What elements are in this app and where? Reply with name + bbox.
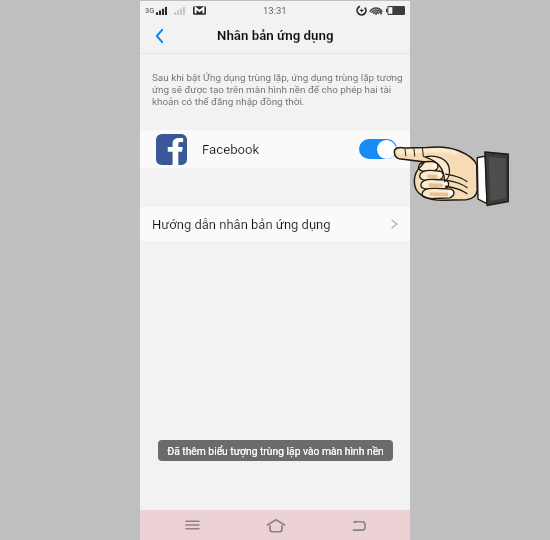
button[interactable]: Recent apps <box>150 510 234 540</box>
button[interactable]: Back <box>146 23 172 49</box>
button[interactable]: Hướng dẫn nhân bản ứng dụng <box>140 207 410 241</box>
button[interactable]: Facebook <box>140 130 410 168</box>
staticText: Facebook <box>202 142 260 157</box>
staticText: Hướng dẫn nhân bản ứng dụng <box>152 217 331 232</box>
button[interactable]: Home <box>234 510 317 540</box>
button[interactable]: Back <box>317 510 400 540</box>
staticText: Đã thêm biểu tượng trùng lặp vào màn hìn… <box>167 445 384 457</box>
button[interactable]: Toggle Facebook clone <box>359 139 397 159</box>
staticText: Sau khi bật Ứng dụng trùng lặp, ứng dụng… <box>152 72 406 108</box>
staticText: 13:31 <box>263 5 287 16</box>
staticText: Nhân bản ứng dụng <box>217 28 334 44</box>
staticText: 3G <box>145 6 155 15</box>
